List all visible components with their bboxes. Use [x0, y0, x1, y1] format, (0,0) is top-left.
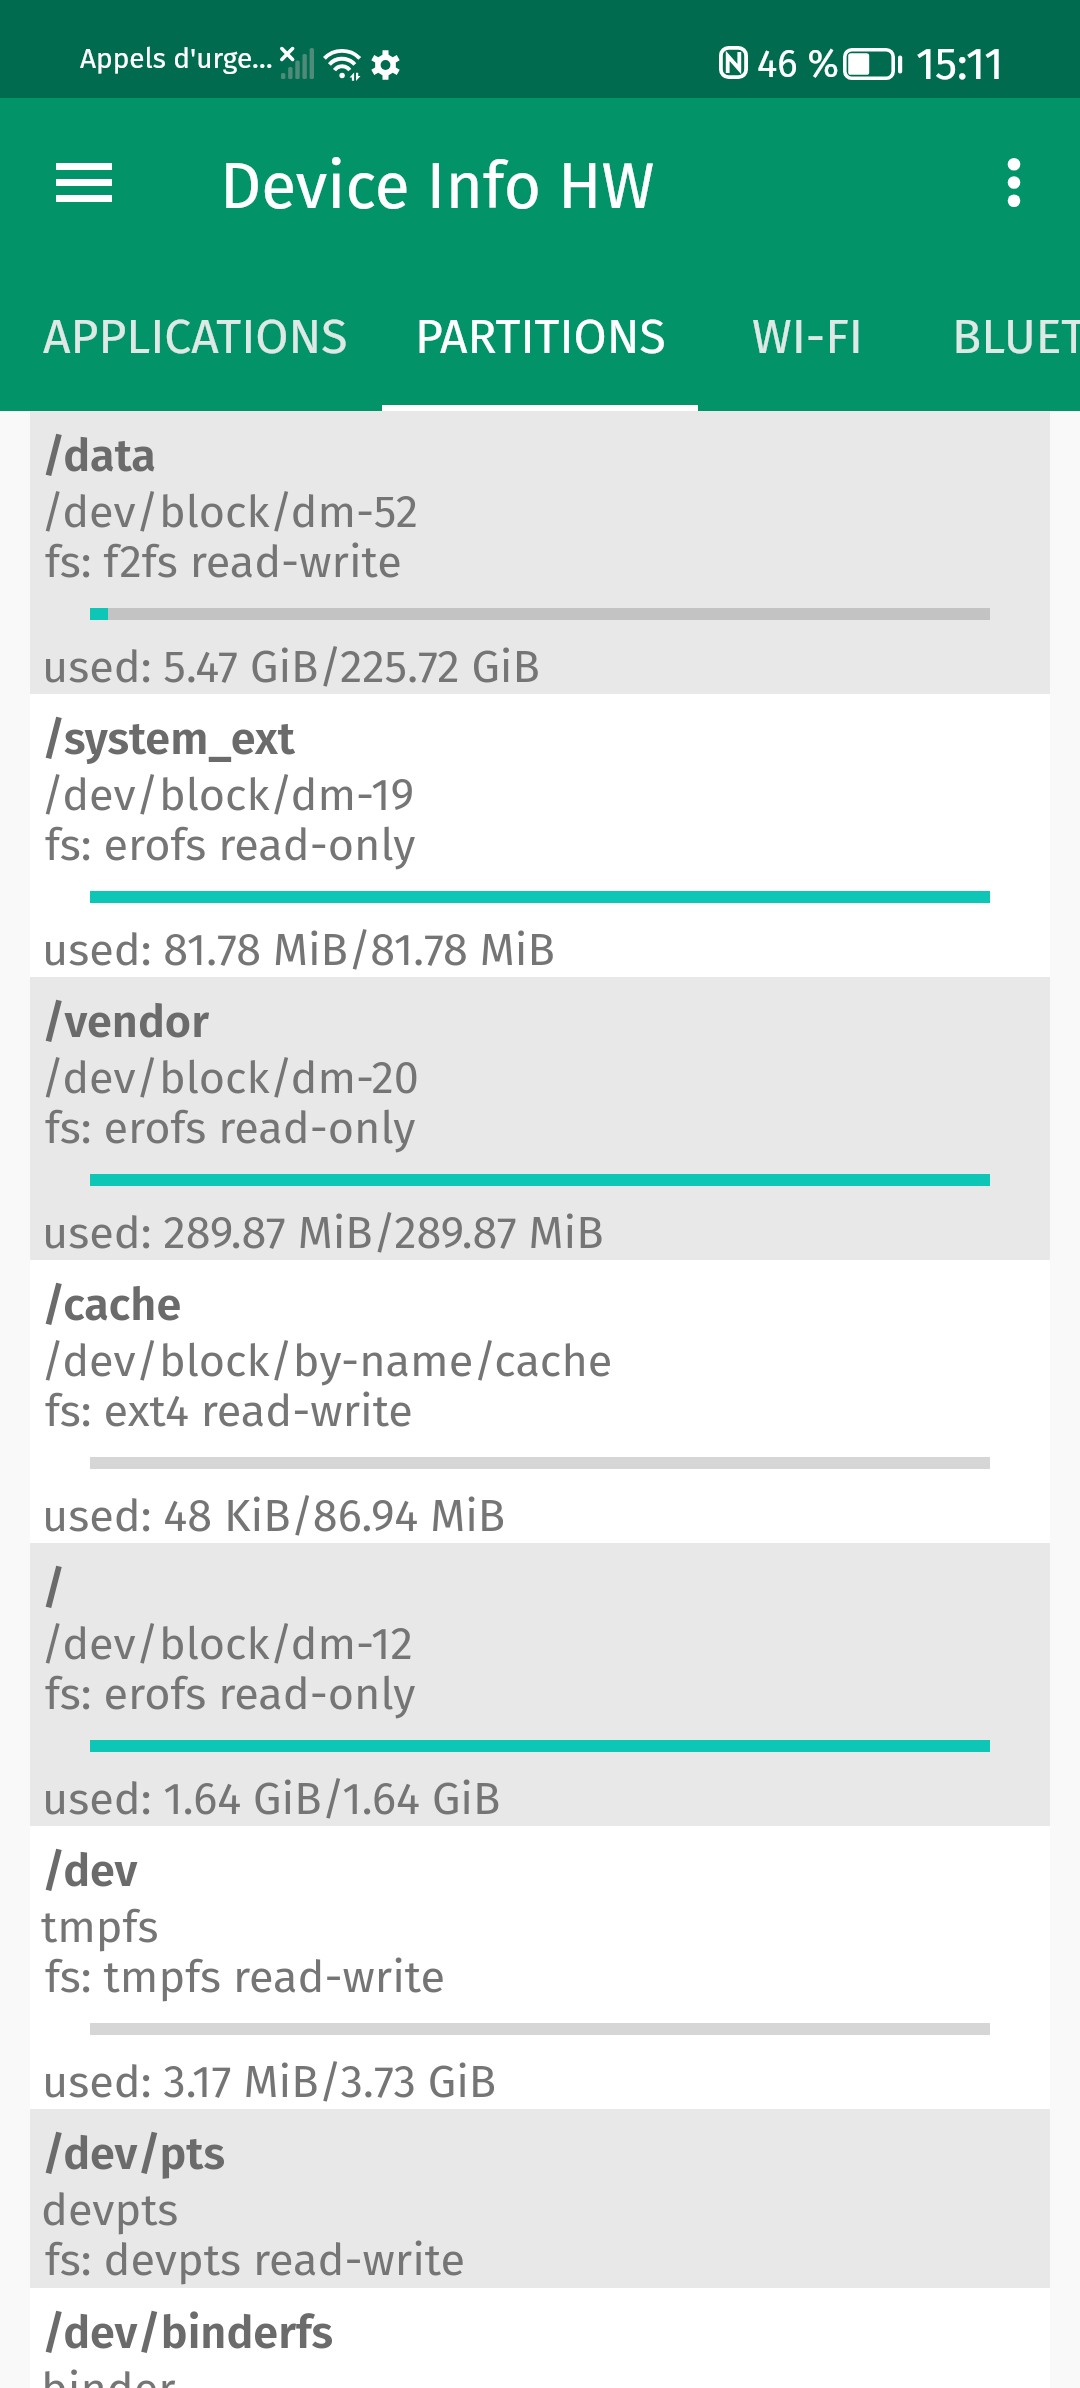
- staticText: used: 5.47 GiB/225.72 GiB: [42, 640, 540, 694]
- button[interactable]: /vendor: [30, 977, 1050, 1260]
- staticText: /dev/binderfs: [42, 2306, 334, 2360]
- staticText: binder: [41, 2362, 176, 2388]
- staticText: /dev/block/dm-52: [41, 485, 419, 539]
- button[interactable]: /cache: [30, 1260, 1050, 1543]
- staticText: fs: erofs read-only: [45, 1667, 416, 1721]
- staticText: Appels d'urge…: [80, 42, 273, 76]
- staticText: used: 289.87 MiB/289.87 MiB: [42, 1206, 604, 1260]
- staticText: /data: [42, 429, 156, 483]
- button[interactable]: Open navigation menu: [36, 134, 132, 230]
- staticText: /dev/block/dm-19: [41, 768, 415, 822]
- button[interactable]: /data: [30, 411, 1050, 694]
- button[interactable]: PARTITIONS: [382, 294, 698, 411]
- staticText: used: 81.78 MiB/81.78 MiB: [42, 923, 555, 977]
- staticText: /cache: [42, 1278, 182, 1332]
- button[interactable]: /dev/pts: [30, 2109, 1050, 2288]
- staticText: /dev/block/by-name/cache: [41, 1334, 613, 1388]
- staticText: WI-FI: [752, 308, 863, 366]
- staticText: /dev/pts: [42, 2127, 225, 2181]
- staticText: fs: ext4 read-write: [45, 1384, 413, 1438]
- staticText: used: 1.64 GiB/1.64 GiB: [42, 1772, 501, 1826]
- button[interactable]: /dev: [30, 1826, 1050, 2109]
- button[interactable]: More options: [966, 134, 1062, 230]
- staticText: 46 %: [757, 41, 839, 87]
- staticText: Device Info HW: [220, 148, 655, 225]
- staticText: APPLICATIONS: [43, 308, 348, 366]
- staticText: /dev: [42, 1844, 138, 1898]
- staticText: fs: erofs read-only: [45, 818, 416, 872]
- staticText: devpts: [41, 2183, 179, 2237]
- staticText: tmpfs: [41, 1900, 159, 1954]
- staticText: PARTITIONS: [415, 308, 666, 366]
- button[interactable]: /dev/binderfs: [30, 2288, 1050, 2388]
- staticText: /dev/block/dm-20: [41, 1051, 419, 1105]
- staticText: used: 48 KiB/86.94 MiB: [42, 1489, 506, 1543]
- button[interactable]: /: [30, 1543, 1050, 1826]
- staticText: /dev/block/dm-12: [41, 1617, 413, 1671]
- staticText: fs: tmpfs read-write: [45, 1950, 445, 2004]
- button[interactable]: BLUETOOTH: [917, 294, 1080, 411]
- staticText: fs: erofs read-only: [45, 1101, 416, 1155]
- staticText: 15:11: [916, 38, 1004, 91]
- button[interactable]: WI-FI: [698, 294, 917, 411]
- staticText: /: [42, 1561, 66, 1615]
- staticText: fs: f2fs read-write: [45, 535, 402, 589]
- staticText: fs: devpts read-write: [45, 2233, 465, 2287]
- staticText: /vendor: [42, 995, 209, 1049]
- button[interactable]: APPLICATIONS: [8, 294, 382, 411]
- button[interactable]: /system_ext: [30, 694, 1050, 977]
- staticText: BLUETOOTH: [952, 308, 1080, 366]
- staticText: /system_ext: [42, 712, 295, 766]
- staticText: used: 3.17 MiB/3.73 GiB: [42, 2055, 497, 2109]
